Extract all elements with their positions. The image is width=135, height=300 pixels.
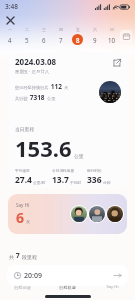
staticText: 友 <box>26 219 31 224</box>
button[interactable]: 六 <box>86 26 103 46</box>
staticText: 27.4 <box>15 174 32 186</box>
staticText: 13.7 <box>52 174 69 186</box>
staticText: 星期五 · 正月廿八 <box>15 68 50 74</box>
staticText: 9 <box>93 36 97 44</box>
button[interactable]: 20:09 <box>7 265 128 286</box>
staticText: 二 <box>25 27 29 32</box>
button[interactable]: Ride photo <box>99 81 121 103</box>
staticText: 当日里程 <box>15 126 35 132</box>
button[interactable]: Calendar <box>120 30 132 42</box>
staticText: 7 <box>59 36 63 44</box>
staticText: 336 <box>87 174 102 186</box>
staticText: 平均速度 <box>15 168 30 173</box>
staticText: 行程记录 <box>14 285 31 290</box>
staticText: 2024.03.08 <box>15 56 57 67</box>
button[interactable]: Friend avatar <box>71 206 87 222</box>
staticText: 骑行时长 <box>87 168 102 173</box>
button[interactable]: 一 <box>1 26 18 46</box>
staticText: 行程轨迹 <box>59 285 76 290</box>
staticText: 7 <box>14 251 22 261</box>
staticText: 6 <box>42 36 46 44</box>
button[interactable]: Share <box>111 57 123 69</box>
button[interactable]: 共 <box>9 251 37 261</box>
staticText: 20:09 <box>24 271 42 281</box>
staticText: 千瓦时 <box>70 180 82 185</box>
staticText: 一 <box>8 27 12 32</box>
staticText: 7318 <box>28 93 47 102</box>
staticText: Say Hi <box>106 284 119 290</box>
button[interactable]: 三 <box>35 26 52 46</box>
staticText: 5 <box>25 36 29 44</box>
staticText: 日 <box>110 27 114 32</box>
staticText: 六 <box>93 27 97 32</box>
staticText: 3:48 <box>5 2 18 11</box>
staticText: 您已经坚持骑行共 <box>15 85 49 90</box>
staticText: 共 <box>9 254 14 260</box>
staticText: 五 <box>76 27 80 32</box>
staticText: 公里/时 <box>33 180 46 185</box>
staticText: Say Hi <box>16 202 30 208</box>
staticText: 段里程 <box>22 254 37 260</box>
staticText: 分钟 <box>103 180 111 185</box>
staticText: 公里 <box>47 96 56 101</box>
button[interactable]: 四 <box>52 26 69 46</box>
staticText: 4 <box>8 36 12 44</box>
staticText: 公里 <box>74 153 84 159</box>
staticText: 153.6 <box>15 133 72 163</box>
staticText: 共行驶 <box>15 96 28 101</box>
button[interactable]: Say Hi <box>8 194 127 234</box>
staticText: 8 <box>76 36 80 44</box>
button[interactable]: 行程轨迹 <box>45 282 90 292</box>
button[interactable]: 行程记录 <box>0 282 45 292</box>
button[interactable]: 日 <box>103 26 120 46</box>
button[interactable]: 五 <box>69 26 86 46</box>
staticText: 四 <box>59 27 63 32</box>
staticText: 112 <box>49 82 64 91</box>
staticText: 10 <box>108 36 116 44</box>
staticText: 三 <box>42 27 46 32</box>
button[interactable]: Close <box>3 13 17 27</box>
button[interactable]: 二 <box>18 26 35 46</box>
button[interactable]: Say Hi <box>90 282 135 292</box>
staticText: 今日消耗电量 <box>52 168 75 173</box>
staticText: 天 <box>64 85 69 90</box>
button[interactable]: Friend avatar <box>107 206 123 222</box>
staticText: 6 <box>16 208 25 227</box>
button[interactable]: Friend avatar <box>89 206 105 222</box>
